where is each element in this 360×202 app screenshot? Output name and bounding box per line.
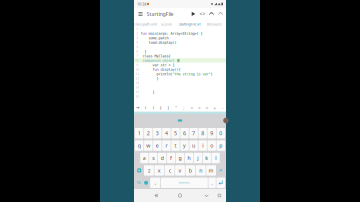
staticText: 14 [135,86,139,89]
button[interactable]: o [207,140,216,151]
staticText: l [215,154,216,162]
staticText: s [152,154,154,162]
button[interactable]: t [171,140,180,151]
button[interactable]: ?!# [135,178,142,188]
staticText: y [183,142,186,149]
button[interactable]: z [144,165,154,176]
button[interactable]: i [198,140,207,151]
staticText: 16 [135,95,139,98]
button[interactable]: 7 [189,128,198,138]
button[interactable]: l [211,153,220,163]
button[interactable]: x [154,165,164,176]
button[interactable]: k [203,153,211,163]
button[interactable]: 3 [153,128,162,138]
button[interactable]: = [203,104,211,111]
staticText: a [143,154,146,162]
button[interactable]: ; [180,104,188,111]
button[interactable]: r [162,140,171,151]
staticText: 6 [136,50,138,53]
button[interactable]: { [157,104,165,111]
staticText: 9 [136,63,138,67]
button[interactable]: } [165,104,172,111]
button[interactable]: Shift [135,165,143,176]
staticText: StartingFile [146,10,173,18]
button[interactable]: < [188,104,195,111]
staticText: i [202,142,203,149]
button[interactable]: Home [175,189,185,202]
button[interactable]: Resource [203,20,226,30]
button[interactable]: g [176,153,184,163]
button[interactable]: > [195,104,203,111]
button[interactable]: s [149,153,157,163]
staticText: 8 [201,130,204,137]
staticText: " [175,105,177,110]
button[interactable]: 0 [216,128,225,138]
button[interactable]: Return [216,178,225,188]
button[interactable]: Undo [207,8,216,20]
staticText: , [155,179,156,186]
staticText: load.display() [140,40,176,45]
button[interactable]: v [175,165,185,176]
button[interactable]: q [135,140,143,151]
button[interactable]: ) [149,104,157,111]
button[interactable]: StartingFile.kt [176,20,203,30]
button[interactable]: 9 [207,128,216,138]
button[interactable]: Emoji [143,178,150,188]
button[interactable]: ( [142,104,149,111]
staticText: k [205,154,208,162]
button[interactable]: c [165,165,174,176]
button[interactable]: 5 [171,128,180,138]
staticText: r [165,142,167,149]
button[interactable]: b [185,165,195,176]
button[interactable]: n [196,165,206,176]
button[interactable]: y [180,140,189,151]
button[interactable]: Space [161,178,208,188]
button[interactable]: u [189,140,198,151]
button[interactable]: Run [189,8,198,20]
button[interactable]: m [206,165,216,176]
staticText: u [192,142,195,149]
staticText: h [187,154,190,162]
button[interactable]: f [167,153,175,163]
button[interactable]: p [216,140,225,151]
button[interactable]: - [218,104,226,111]
button[interactable]: Backspace [217,165,225,176]
staticText: 0 [219,130,222,137]
button[interactable]: classpath.xml [134,20,157,30]
button[interactable]: d [158,153,166,163]
button[interactable]: 6 [180,128,189,138]
staticText: <> [199,11,205,17]
button[interactable]: w [144,140,153,151]
button[interactable]: Back [151,189,161,202]
button[interactable]: ⇥ [134,104,142,111]
button[interactable]: 8 [198,128,207,138]
button[interactable]: a [140,153,148,163]
staticText: ( [145,105,146,110]
button[interactable]: Hide keyboard [202,189,211,202]
button[interactable]: ui.json [157,20,176,30]
button[interactable]: , [150,178,160,188]
button[interactable]: . [208,178,216,188]
staticText: 9 [210,130,213,137]
staticText: fun [140,67,160,72]
staticText: x [158,167,161,174]
staticText: 7 [136,54,138,58]
button[interactable]: j [194,153,202,163]
button[interactable]: Recents [215,189,224,202]
button[interactable]: 1 [135,128,143,138]
button[interactable]: Redo [216,8,225,20]
button[interactable]: + [211,104,218,111]
staticText: w [146,142,150,149]
button[interactable]: 2 [144,128,153,138]
staticText: d [161,154,164,162]
staticText: companion object [140,58,176,63]
button[interactable]: Source [198,8,207,20]
button[interactable]: Menu [136,8,145,20]
button[interactable]: h [185,153,193,163]
staticText: 5 [174,130,177,137]
button[interactable]: " [172,104,180,111]
staticText: b [189,167,192,174]
button[interactable]: e [153,140,162,151]
staticText: var str = 1 [140,63,174,67]
button[interactable]: 4 [162,128,171,138]
